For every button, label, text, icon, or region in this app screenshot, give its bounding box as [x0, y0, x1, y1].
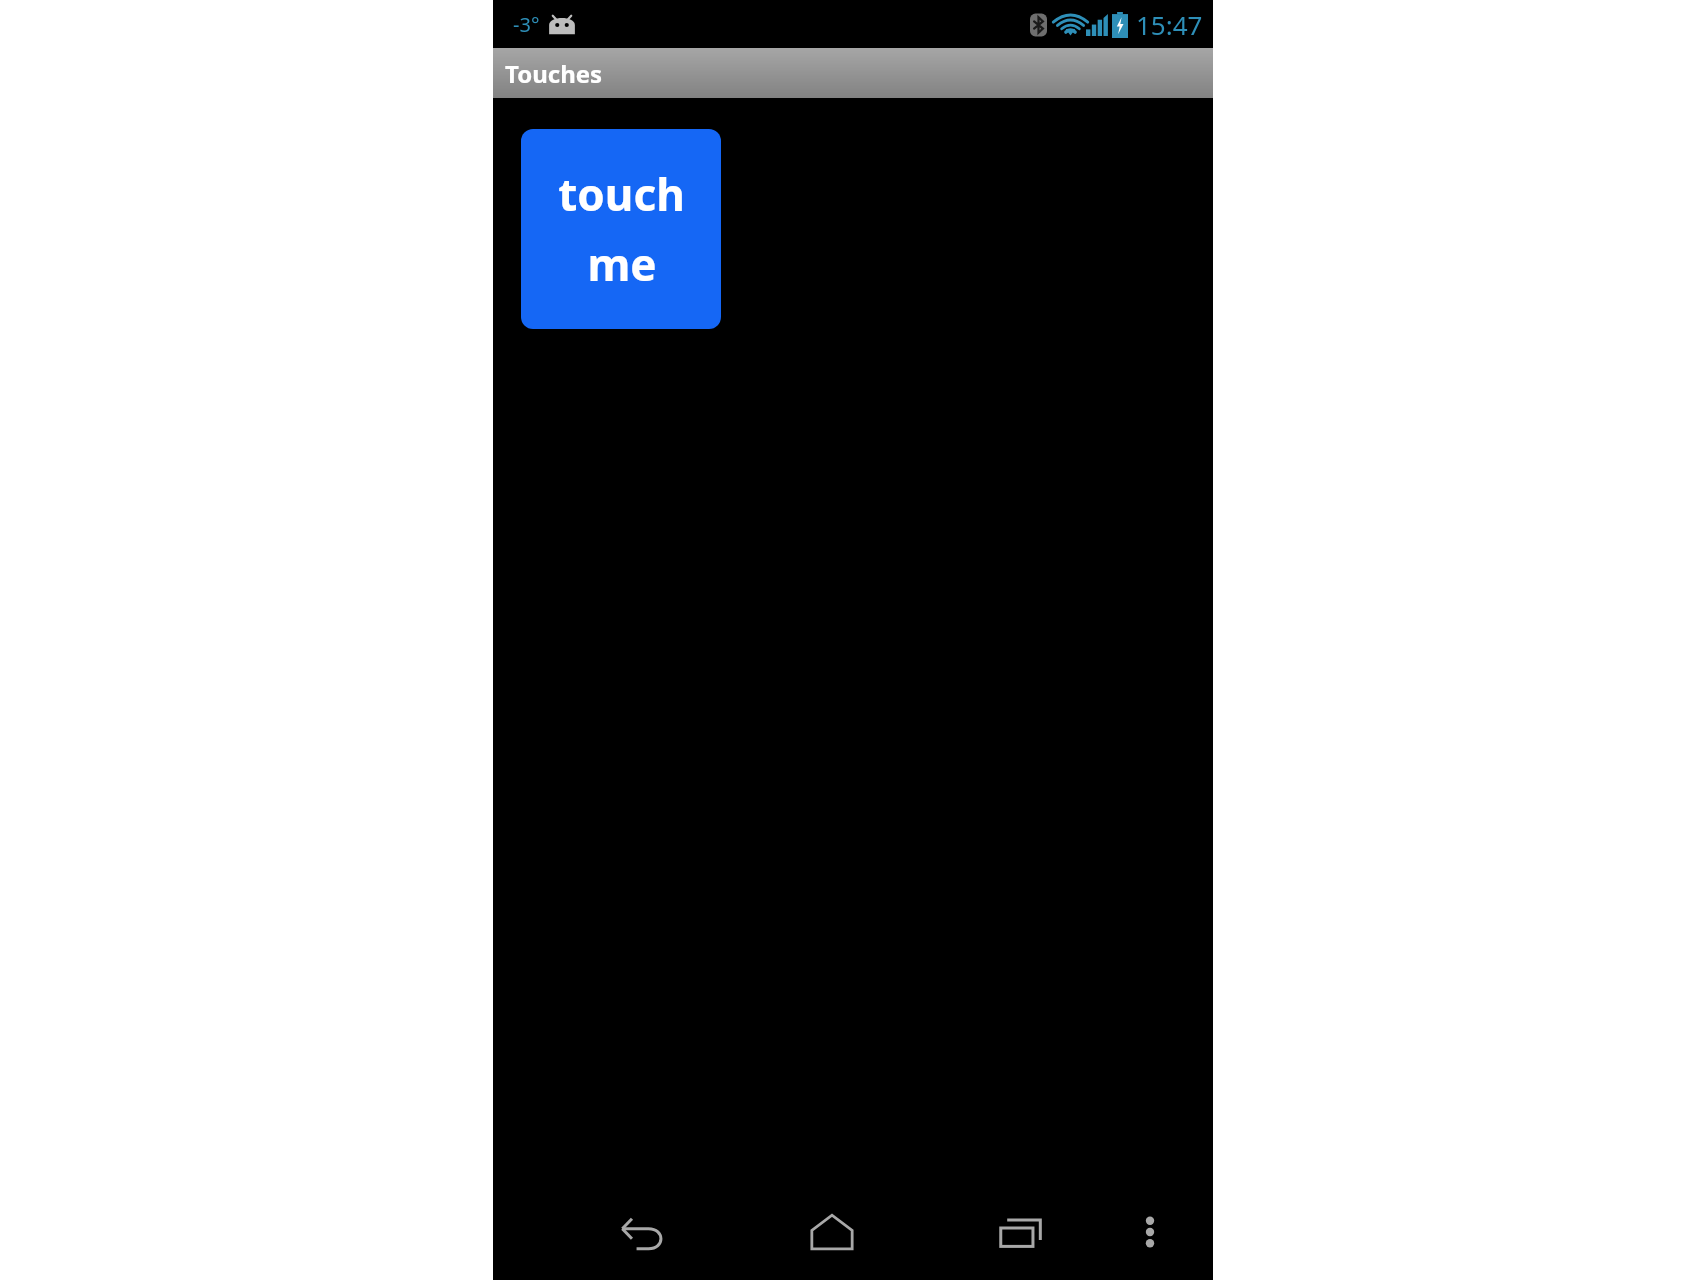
staticText: -3°	[513, 11, 540, 38]
staticText: touch	[558, 164, 685, 224]
button[interactable]: touch	[521, 129, 721, 329]
staticText: Touches	[505, 57, 603, 90]
staticText: 15:47	[1136, 7, 1203, 42]
staticText: me	[587, 234, 657, 294]
button[interactable]: Home	[737, 1184, 926, 1280]
button[interactable]: Back	[549, 1184, 737, 1280]
button[interactable]: More options	[1115, 1184, 1185, 1280]
button[interactable]: Recent apps	[926, 1184, 1115, 1280]
